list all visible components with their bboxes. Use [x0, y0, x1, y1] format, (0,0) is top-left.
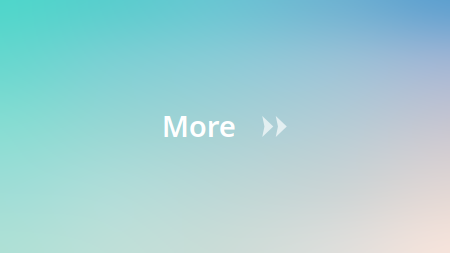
button[interactable]: More — [162, 106, 287, 145]
staticText: More — [162, 106, 236, 145]
